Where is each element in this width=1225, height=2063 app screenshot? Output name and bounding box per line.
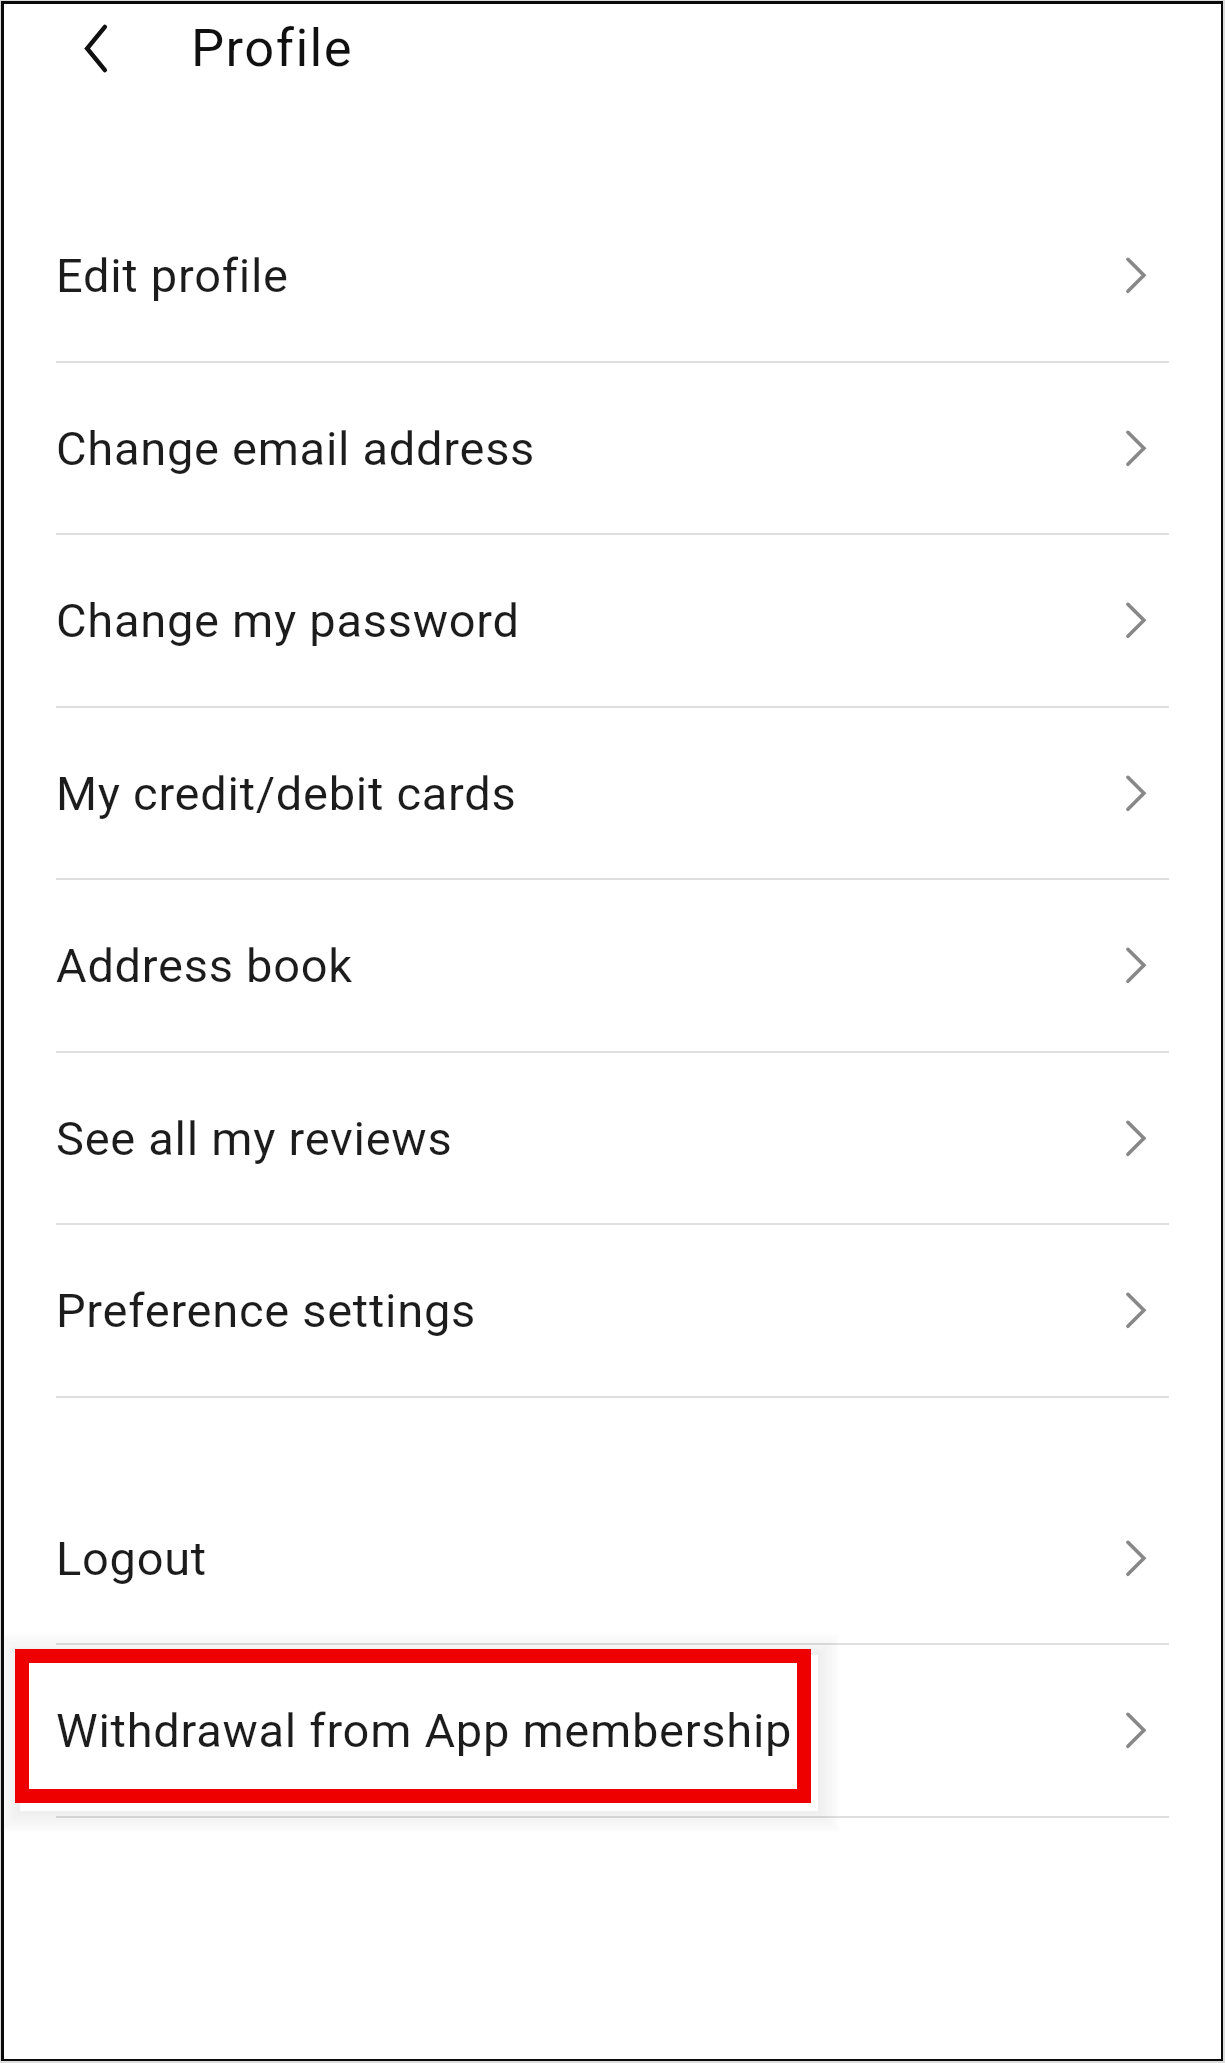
button[interactable]: See all my reviews [4, 1051, 1221, 1224]
staticText: Profile [191, 17, 354, 79]
button[interactable]: Withdrawal from App membership [4, 1643, 1221, 1816]
staticText: See all my reviews [56, 1111, 453, 1166]
staticText: Withdrawal from App membership [56, 1703, 793, 1758]
button[interactable]: Edit profile [4, 188, 1221, 361]
button[interactable]: Change my password [4, 533, 1221, 706]
staticText: Logout [56, 1531, 207, 1586]
button[interactable]: Back [73, 21, 119, 76]
staticText: My credit/debit cards [56, 766, 517, 821]
staticText: Change email address [56, 421, 536, 476]
button[interactable]: My credit/debit cards [4, 706, 1221, 879]
button[interactable]: Preference settings [4, 1223, 1221, 1396]
staticText: Change my password [56, 593, 520, 648]
button[interactable]: Address book [4, 878, 1221, 1051]
staticText: Address book [56, 938, 353, 993]
staticText: Edit profile [56, 248, 289, 303]
button[interactable]: Logout [4, 1471, 1221, 1644]
staticText: Preference settings [56, 1283, 476, 1338]
button[interactable]: Change email address [4, 361, 1221, 534]
